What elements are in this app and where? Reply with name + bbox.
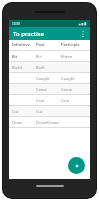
staticText: Cost xyxy=(36,98,61,103)
staticText: Bit xyxy=(36,54,61,59)
button[interactable]: Build xyxy=(9,62,90,72)
staticText: Bitten xyxy=(61,54,87,59)
button[interactable]: Draw xyxy=(9,117,90,127)
button[interactable]: Cut xyxy=(9,106,90,116)
staticText: Participle xyxy=(61,42,87,48)
staticText: Past xyxy=(36,42,61,48)
button[interactable]: Add verb xyxy=(68,157,85,174)
staticText: Build xyxy=(12,65,36,70)
staticText: Cut xyxy=(12,109,36,114)
staticText: Cut xyxy=(36,109,61,114)
staticText: Caught xyxy=(61,76,87,81)
staticText: Draw xyxy=(12,120,36,125)
button[interactable]: Cost xyxy=(9,95,90,105)
staticText: 12:30 xyxy=(12,22,20,26)
button[interactable]: Caught xyxy=(9,73,90,83)
staticText: Caught xyxy=(36,76,61,81)
staticText: Came xyxy=(36,87,61,92)
staticText: Bit xyxy=(12,54,36,59)
button[interactable]: More options xyxy=(77,28,88,39)
staticText: Cost xyxy=(61,98,87,103)
staticText: Infinitive xyxy=(12,42,36,48)
staticText: Built xyxy=(36,65,61,70)
staticText: Come xyxy=(61,87,87,92)
staticText: Drew/Drawn xyxy=(36,120,61,125)
staticText: To practise xyxy=(13,30,44,38)
button[interactable]: Bit xyxy=(9,51,90,61)
button[interactable]: Came xyxy=(9,84,90,94)
